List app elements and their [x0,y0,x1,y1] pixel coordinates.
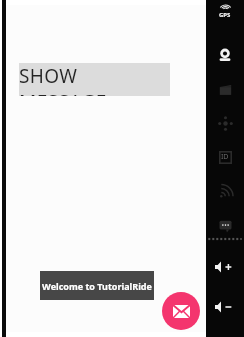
button[interactable]: Record screen [206,74,244,104]
button[interactable]: SHOW MESSAGE [19,63,170,96]
button[interactable]: Cellular [206,176,244,206]
staticText: Welcome to TutorialRide [42,280,152,292]
staticText: ID [221,152,229,162]
button[interactable]: Camera [206,40,244,70]
button[interactable]: Send message [162,292,200,330]
staticText: GPS [219,11,231,19]
button[interactable]: Volume up [206,252,244,282]
button[interactable]: Directional pad [206,108,244,138]
button[interactable]: Location GPS [206,0,244,22]
button[interactable]: Phone and SMS [206,210,244,240]
button[interactable]: Device identity [206,142,244,172]
button[interactable]: Volume down [206,292,244,322]
staticText: SHOW MESSAGE [19,63,170,96]
